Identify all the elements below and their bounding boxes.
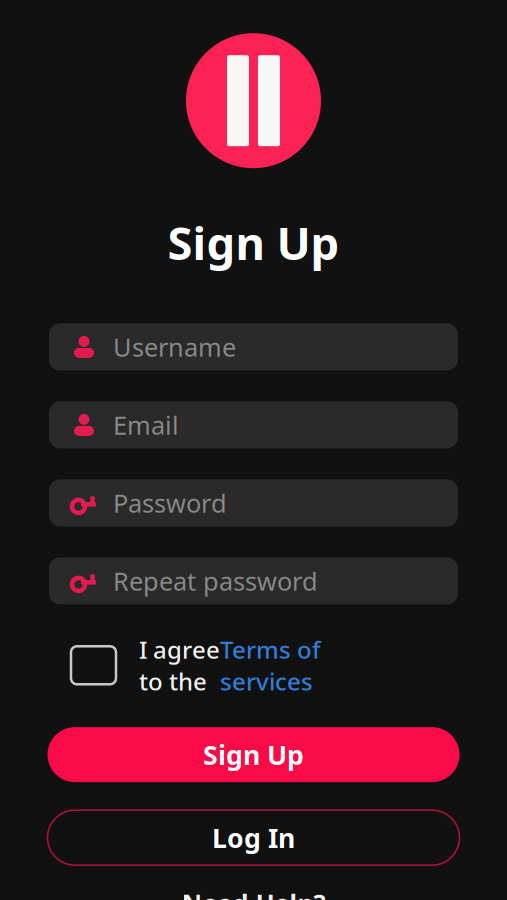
button[interactable]: I agree to the (0, 633, 507, 697)
staticText: Repeat password (113, 564, 318, 598)
staticText: Terms of services (220, 633, 321, 697)
staticText: Sign Up (167, 212, 339, 272)
button[interactable]: Log In (47, 810, 459, 865)
staticText: Log In (212, 820, 295, 855)
button[interactable]: Need Help? (163, 882, 343, 900)
staticText: Email (113, 408, 179, 442)
button[interactable]: Sign Up (47, 727, 459, 782)
staticText: Username (113, 330, 236, 364)
staticText: Need Help? (181, 886, 325, 900)
staticText: I agree to the (139, 633, 220, 697)
staticText: Password (113, 486, 227, 520)
staticText: Sign Up (203, 737, 304, 772)
